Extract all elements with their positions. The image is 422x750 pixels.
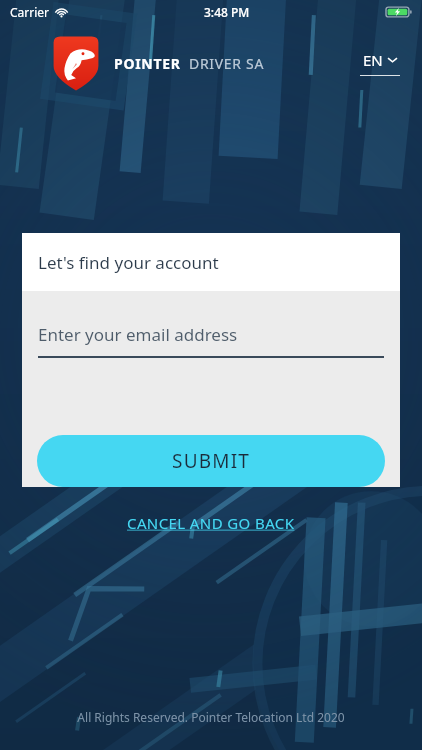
staticText: SUBMIT — [172, 448, 251, 474]
staticText: 3:48 PM — [204, 4, 250, 20]
staticText: EN — [363, 50, 383, 70]
staticText: Enter your email address — [38, 323, 238, 346]
staticText: Carrier — [10, 4, 50, 20]
staticText: DRIVER SA — [189, 54, 265, 73]
button[interactable]: EN — [356, 48, 404, 78]
button[interactable]: SUBMIT — [37, 435, 385, 487]
button[interactable]: CANCEL AND GO BACK — [113, 507, 309, 539]
staticText: CANCEL AND GO BACK — [127, 513, 295, 533]
staticText: All Rights Reserved. Pointer Telocation … — [77, 709, 345, 725]
staticText: Let's find your account — [38, 251, 219, 274]
staticText: POINTER — [114, 54, 181, 73]
